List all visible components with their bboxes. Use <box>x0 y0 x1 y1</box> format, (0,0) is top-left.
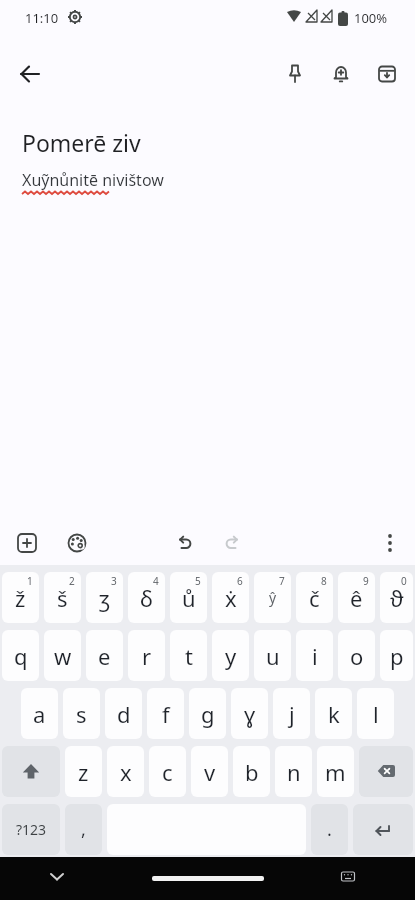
button[interactable]: m <box>317 746 354 797</box>
staticText: x <box>120 757 132 787</box>
button[interactable]: ů <box>170 572 207 623</box>
button[interactable]: u <box>254 630 291 681</box>
button[interactable]: d <box>105 688 142 739</box>
button[interactable]: v <box>191 746 228 797</box>
button[interactable]: . <box>311 804 348 855</box>
staticText: 1 <box>27 574 33 588</box>
staticText: . <box>327 817 332 842</box>
button[interactable] <box>2 746 60 797</box>
staticText: m <box>325 757 346 787</box>
staticText: 100% <box>354 9 388 27</box>
button[interactable]: δ <box>128 572 165 623</box>
staticText: 2 <box>69 574 75 588</box>
button[interactable] <box>318 51 364 97</box>
staticText: 4 <box>153 574 159 588</box>
staticText: v <box>204 757 216 787</box>
button[interactable]: w <box>44 630 81 681</box>
staticText: b <box>245 757 259 787</box>
staticText: f <box>162 699 170 729</box>
button[interactable]: ŷ <box>254 572 291 623</box>
button[interactable] <box>353 804 413 855</box>
button[interactable] <box>166 524 204 562</box>
staticText: s <box>76 699 87 729</box>
button[interactable]: y <box>212 630 249 681</box>
button[interactable]: e <box>86 630 123 681</box>
button[interactable] <box>38 857 76 895</box>
staticText: w <box>54 641 72 671</box>
button[interactable] <box>8 524 46 562</box>
staticText: 0 <box>401 574 407 588</box>
staticText: 7 <box>279 574 285 588</box>
button[interactable]: r <box>128 630 165 681</box>
button[interactable] <box>58 524 96 562</box>
staticText: ŷ <box>269 588 277 607</box>
button[interactable]: ẋ <box>212 572 249 623</box>
button[interactable]: s <box>63 688 100 739</box>
button[interactable] <box>213 524 251 562</box>
staticText: ?123 <box>16 820 47 839</box>
staticText: ẋ <box>225 583 237 613</box>
staticText: 11:10 <box>25 9 59 27</box>
button[interactable] <box>8 52 52 96</box>
button[interactable]: t <box>170 630 207 681</box>
staticText: d <box>117 699 131 729</box>
button[interactable]: z <box>65 746 102 797</box>
button[interactable] <box>364 51 410 97</box>
staticText: i <box>312 641 318 671</box>
staticText: o <box>350 641 364 671</box>
button[interactable]: q <box>2 630 39 681</box>
staticText: š <box>57 583 68 613</box>
staticText: e <box>98 641 111 671</box>
button[interactable]: x <box>107 746 144 797</box>
staticText: z <box>78 757 89 787</box>
button[interactable]: š <box>44 572 81 623</box>
staticText: q <box>14 641 28 671</box>
staticText: p <box>390 641 404 671</box>
staticText: ʒ <box>99 583 110 613</box>
button[interactable] <box>329 857 367 895</box>
button[interactable]: l <box>357 688 394 739</box>
staticText: ϑ <box>390 583 404 613</box>
staticText: ů <box>182 583 196 613</box>
button[interactable]: f <box>147 688 184 739</box>
button[interactable]: o <box>338 630 375 681</box>
button[interactable]: n <box>275 746 312 797</box>
staticText: ž <box>15 583 26 613</box>
button[interactable]: k <box>315 688 352 739</box>
staticText: t <box>185 641 193 671</box>
staticText: č <box>309 583 320 613</box>
staticText: a <box>33 699 46 729</box>
button[interactable]: ʒ <box>86 572 123 623</box>
staticText: 9 <box>363 574 369 588</box>
button[interactable]: i <box>296 630 333 681</box>
button[interactable]: a <box>21 688 58 739</box>
button[interactable]: ϑ <box>380 572 413 623</box>
button[interactable]: ɣ <box>231 688 268 739</box>
button[interactable]: ?123 <box>2 804 60 855</box>
button[interactable]: č <box>296 572 333 623</box>
button[interactable]: g <box>189 688 226 739</box>
button[interactable]: c <box>149 746 186 797</box>
button[interactable]: p <box>380 630 413 681</box>
staticText: Xuỹnůnitē nivištow <box>22 169 164 191</box>
staticText: g <box>201 699 215 729</box>
button[interactable]: j <box>273 688 310 739</box>
staticText: 6 <box>237 574 243 588</box>
staticText: j <box>289 699 295 729</box>
staticText: c <box>162 757 173 787</box>
staticText: l <box>373 699 379 729</box>
staticText: , <box>81 817 86 842</box>
staticText: n <box>287 757 301 787</box>
button[interactable]: ž <box>2 572 39 623</box>
staticText: δ <box>140 583 153 613</box>
button[interactable] <box>359 746 413 797</box>
staticText: ɣ <box>244 699 256 729</box>
staticText: 3 <box>111 574 117 588</box>
staticText: 5 <box>195 574 201 588</box>
button[interactable] <box>272 51 318 97</box>
button[interactable]: ê <box>338 572 375 623</box>
button[interactable]: , <box>65 804 102 855</box>
button[interactable]: b <box>233 746 270 797</box>
button[interactable] <box>371 524 409 562</box>
